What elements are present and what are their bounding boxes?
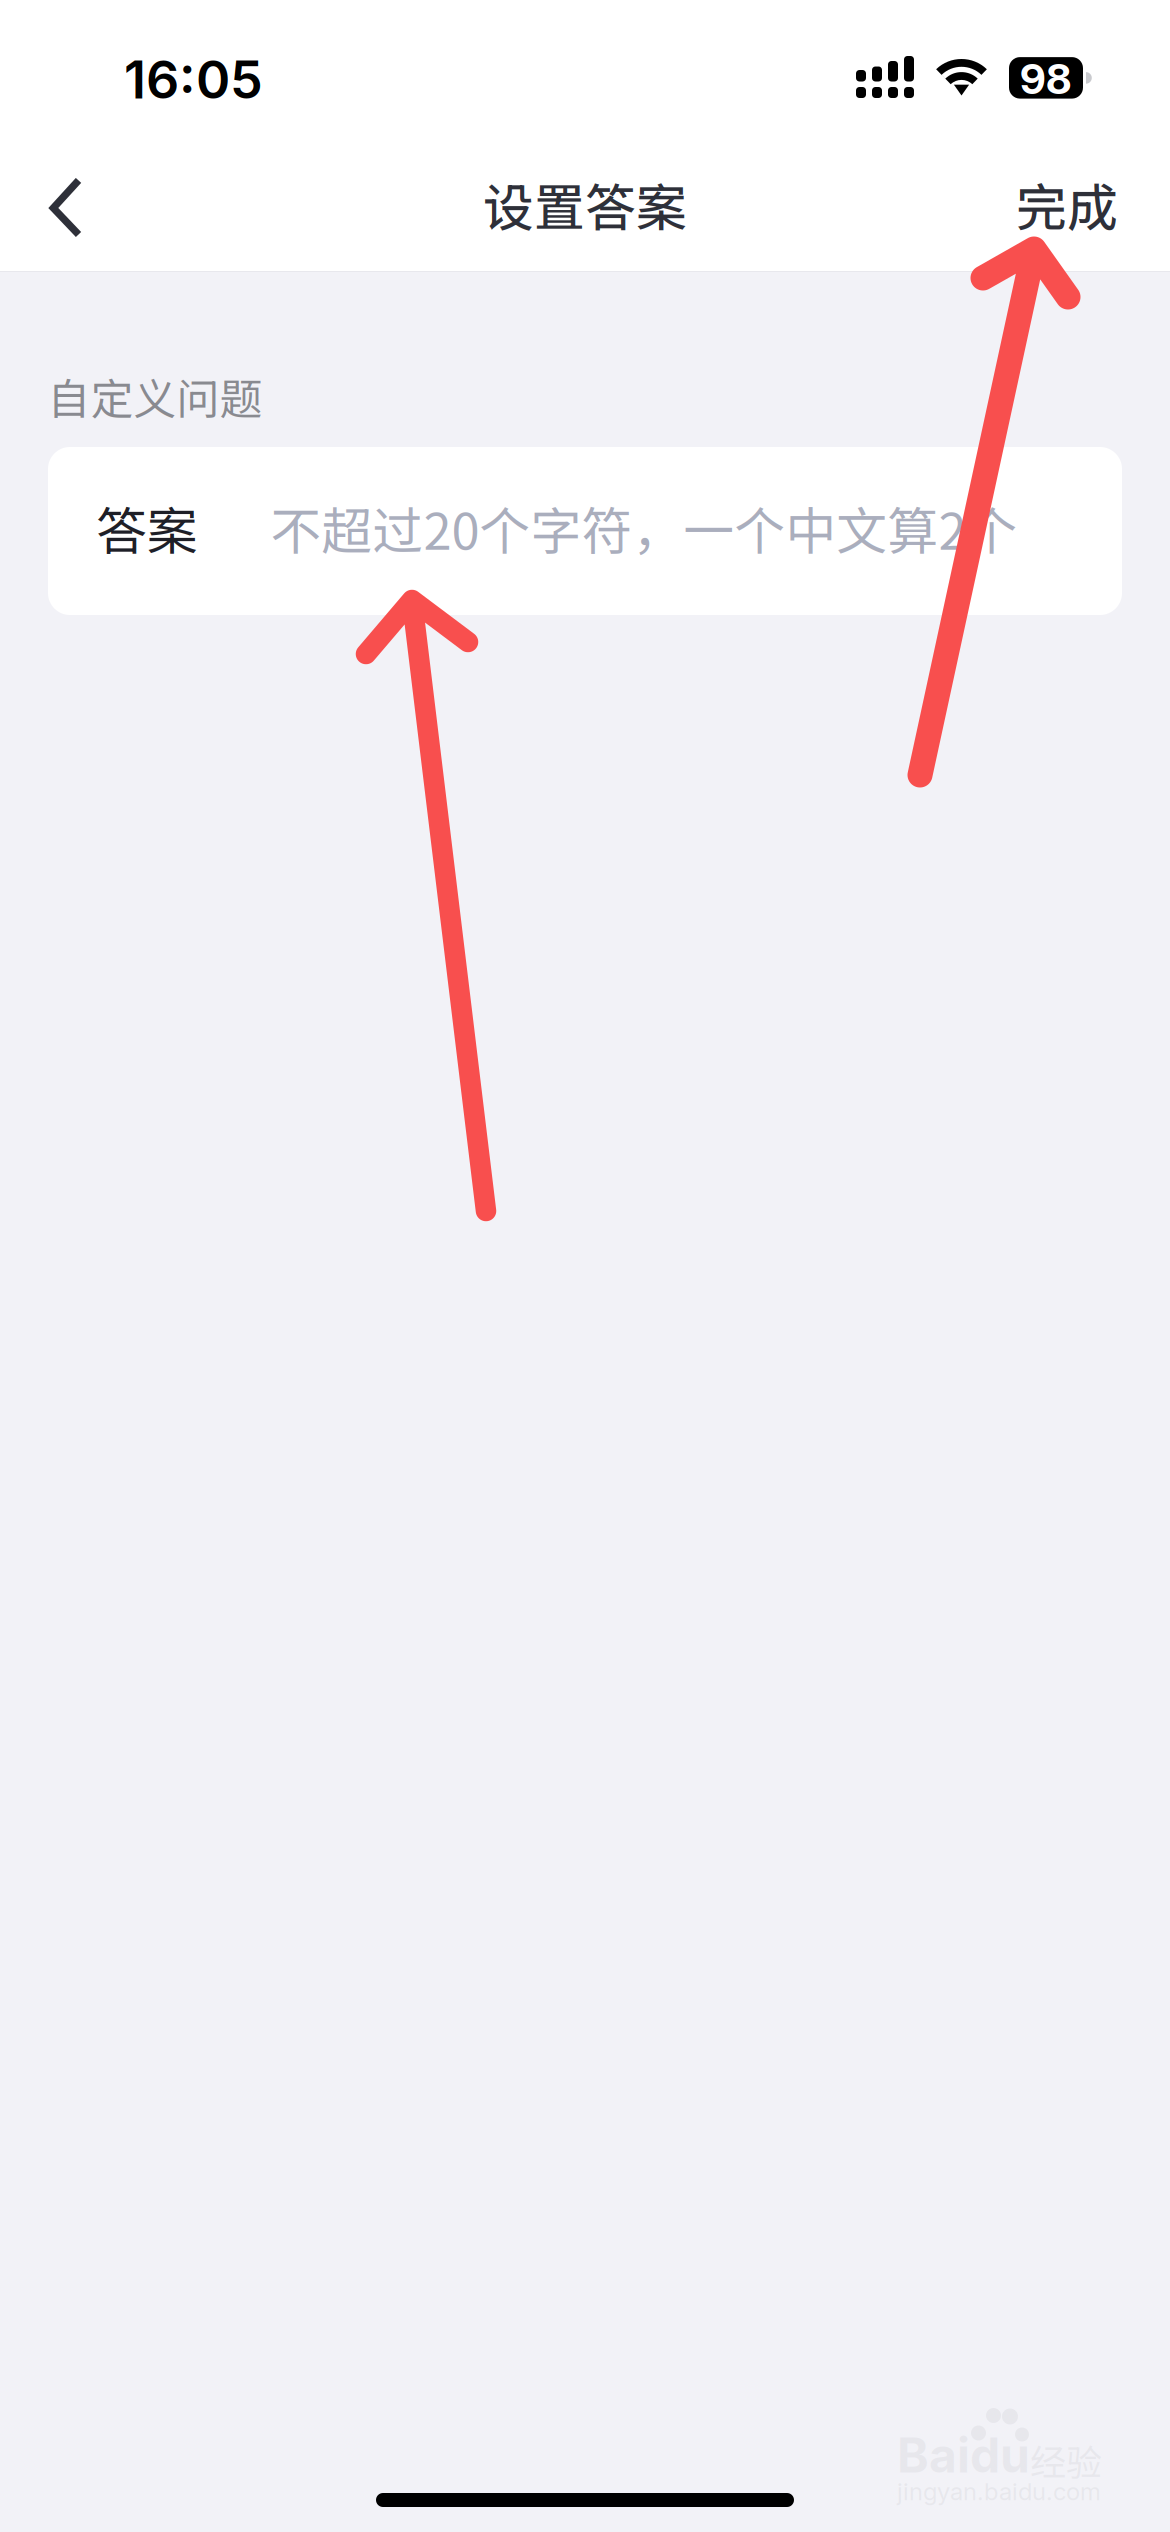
- staticText: 答案: [96, 491, 198, 564]
- staticText: 16:05: [124, 48, 263, 111]
- button[interactable]: 完成: [991, 147, 1141, 265]
- staticText: 自定义问题: [47, 365, 262, 427]
- button[interactable]: Back: [21, 149, 139, 267]
- staticText: Baidu: [897, 2426, 1030, 2484]
- staticText: 经验: [1030, 2434, 1102, 2486]
- staticText: 98: [1020, 54, 1071, 104]
- button[interactable]: 答案: [48, 447, 1122, 615]
- staticText: 不超过20个字符，一个中文算2个: [271, 491, 1018, 564]
- staticText: jingyan.baidu.com: [897, 2477, 1101, 2506]
- staticText: 设置答案: [483, 167, 687, 241]
- staticText: 完成: [1016, 167, 1118, 241]
